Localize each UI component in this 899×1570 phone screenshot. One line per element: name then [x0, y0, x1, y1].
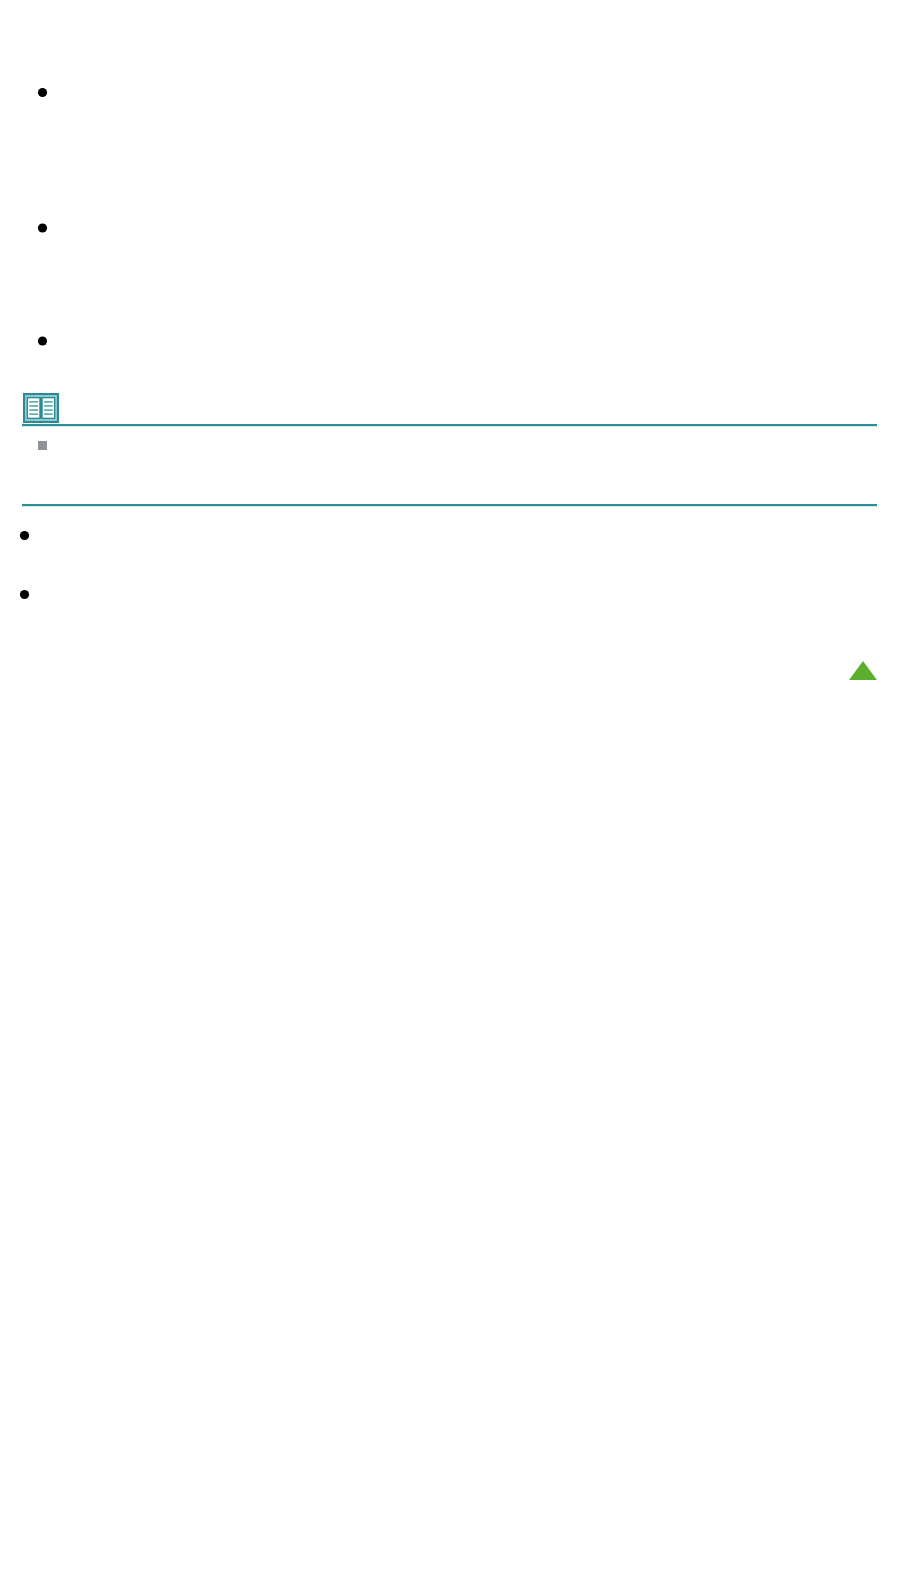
button[interactable]: Back to top [0, 0, 899, 1570]
